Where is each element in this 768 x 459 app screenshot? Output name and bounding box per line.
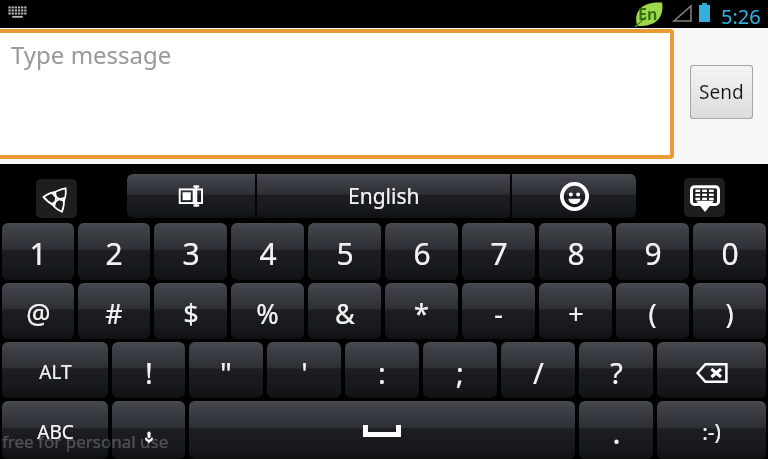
- button[interactable]: $: [154, 283, 227, 339]
- button[interactable]: .: [579, 401, 653, 459]
- button[interactable]: Keyboard layout: [127, 174, 255, 218]
- staticText: ): [725, 295, 734, 332]
- button[interactable]: English: [257, 174, 510, 218]
- staticText: !: [145, 353, 153, 392]
- button[interactable]: ": [189, 342, 263, 398]
- staticText: En: [638, 3, 658, 25]
- staticText: @: [26, 295, 51, 332]
- button[interactable]: 6: [385, 223, 458, 280]
- button[interactable]: (: [616, 283, 689, 339]
- staticText: 6: [413, 233, 431, 274]
- staticText: *: [414, 295, 429, 332]
- button[interactable]: ': [267, 342, 341, 398]
- button[interactable]: Settings: [36, 179, 77, 218]
- staticText: 9: [644, 233, 662, 274]
- button[interactable]: @: [2, 283, 74, 339]
- button[interactable]: :: [345, 342, 419, 398]
- staticText: &: [335, 295, 355, 332]
- staticText: 3: [182, 233, 200, 274]
- button[interactable]: 2: [78, 223, 150, 280]
- button[interactable]: ;: [423, 342, 497, 398]
- button[interactable]: &: [308, 283, 381, 339]
- staticText: #: [105, 295, 123, 332]
- button[interactable]: Space: [189, 401, 575, 459]
- button[interactable]: 3: [154, 223, 227, 280]
- button[interactable]: 9: [616, 223, 689, 280]
- button[interactable]: Hide keyboard: [684, 178, 725, 217]
- staticText: 7: [490, 233, 508, 274]
- staticText: ': [301, 353, 308, 392]
- button[interactable]: :-): [657, 401, 766, 459]
- staticText: 5: [336, 233, 354, 274]
- button[interactable]: !: [112, 342, 185, 398]
- button[interactable]: #: [78, 283, 150, 339]
- button[interactable]: Emoji: [512, 174, 636, 218]
- button[interactable]: ABC: [2, 401, 108, 459]
- staticText: ABC: [37, 419, 74, 445]
- button[interactable]: ?: [579, 342, 653, 398]
- staticText: 4: [259, 233, 277, 274]
- button[interactable]: *: [385, 283, 458, 339]
- button[interactable]: Type message: [0, 33, 670, 155]
- staticText: 8: [567, 233, 585, 274]
- staticText: 5:26: [721, 3, 761, 30]
- button[interactable]: ALT: [2, 342, 108, 398]
- staticText: +: [568, 295, 584, 332]
- button[interactable]: 1: [2, 223, 74, 280]
- staticText: ": [220, 353, 232, 392]
- staticText: Send: [699, 79, 744, 105]
- button[interactable]: 7: [462, 223, 535, 280]
- button[interactable]: Voice input: [112, 401, 185, 459]
- staticText: ?: [610, 353, 623, 392]
- staticText: free for personal use: [2, 430, 169, 453]
- staticText: 1: [29, 233, 47, 274]
- staticText: /: [533, 353, 544, 392]
- button[interactable]: 8: [539, 223, 612, 280]
- staticText: ;: [456, 353, 464, 392]
- staticText: .: [612, 412, 621, 453]
- button[interactable]: +: [539, 283, 612, 339]
- button[interactable]: Backspace: [657, 342, 766, 398]
- staticText: -: [494, 295, 503, 332]
- button[interactable]: %: [231, 283, 304, 339]
- staticText: 2: [105, 233, 123, 274]
- staticText: ALT: [39, 359, 72, 385]
- button[interactable]: Send: [691, 66, 752, 118]
- button[interactable]: 4: [231, 223, 304, 280]
- staticText: English: [348, 182, 420, 211]
- button[interactable]: -: [462, 283, 535, 339]
- staticText: :-): [702, 418, 721, 447]
- button[interactable]: ): [693, 283, 766, 339]
- staticText: Type message: [11, 38, 172, 71]
- button[interactable]: 0: [693, 223, 766, 280]
- staticText: (: [648, 295, 657, 332]
- button[interactable]: 5: [308, 223, 381, 280]
- staticText: $: [183, 295, 199, 332]
- button[interactable]: /: [501, 342, 575, 398]
- staticText: 0: [721, 233, 739, 274]
- staticText: %: [256, 295, 279, 332]
- staticText: :: [378, 353, 386, 392]
